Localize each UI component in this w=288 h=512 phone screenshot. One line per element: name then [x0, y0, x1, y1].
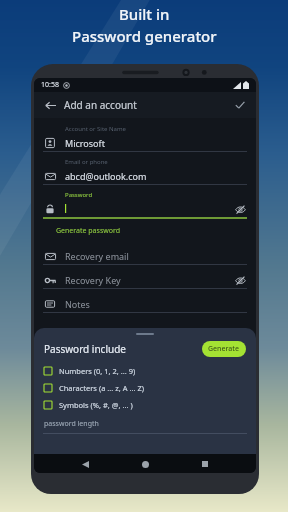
- staticText: password length: [44, 419, 99, 429]
- staticText: Notes: [65, 298, 90, 310]
- button[interactable]: Recovery email: [43, 247, 247, 271]
- staticText: Password: [65, 191, 93, 199]
- button[interactable]: Back: [76, 455, 94, 473]
- staticText: Generate: [208, 344, 240, 354]
- button[interactable]: Home: [136, 455, 154, 473]
- staticText: Characters (a ... z, A ... Z): [59, 383, 145, 393]
- button[interactable]: Notes: [43, 295, 247, 319]
- staticText: Recovery email: [65, 250, 129, 262]
- button[interactable]: Symbols (%, #, @, ... ): [34, 400, 256, 410]
- staticText: Password include: [44, 342, 126, 356]
- button[interactable]: Recents: [196, 455, 214, 473]
- staticText: Built in: [119, 4, 170, 24]
- button[interactable]: Password: [43, 191, 247, 219]
- staticText: Microsoft: [65, 137, 105, 149]
- staticText: Email or phone: [65, 158, 108, 166]
- staticText: Add an account: [64, 98, 137, 112]
- staticText: Symbols (%, #, @, ... ): [59, 400, 133, 410]
- staticText: abcd@outlook.com: [65, 170, 147, 182]
- button[interactable]: Toggle visibility: [233, 273, 247, 287]
- staticText: Recovery Key: [65, 274, 121, 286]
- button[interactable]: Email or phone: [43, 158, 247, 191]
- staticText: 10:58: [41, 80, 59, 90]
- button[interactable]: Back: [42, 97, 58, 113]
- button[interactable]: Characters (a ... z, A ... Z): [34, 383, 256, 393]
- button[interactable]: Save: [232, 97, 248, 113]
- button[interactable]: Generate: [202, 341, 246, 357]
- button[interactable]: Toggle visibility: [233, 202, 247, 216]
- button[interactable]: Account or Site Name: [43, 125, 247, 158]
- button[interactable]: Recovery Key: [43, 271, 247, 295]
- button[interactable]: Numbers (0, 1, 2, ... 9): [34, 366, 256, 376]
- staticText: Generate password: [56, 226, 121, 236]
- staticText: Numbers (0, 1, 2, ... 9): [59, 366, 136, 376]
- staticText: Password generator: [72, 26, 217, 46]
- button[interactable]: Generate password: [43, 225, 121, 237]
- staticText: Account or Site Name: [65, 125, 126, 133]
